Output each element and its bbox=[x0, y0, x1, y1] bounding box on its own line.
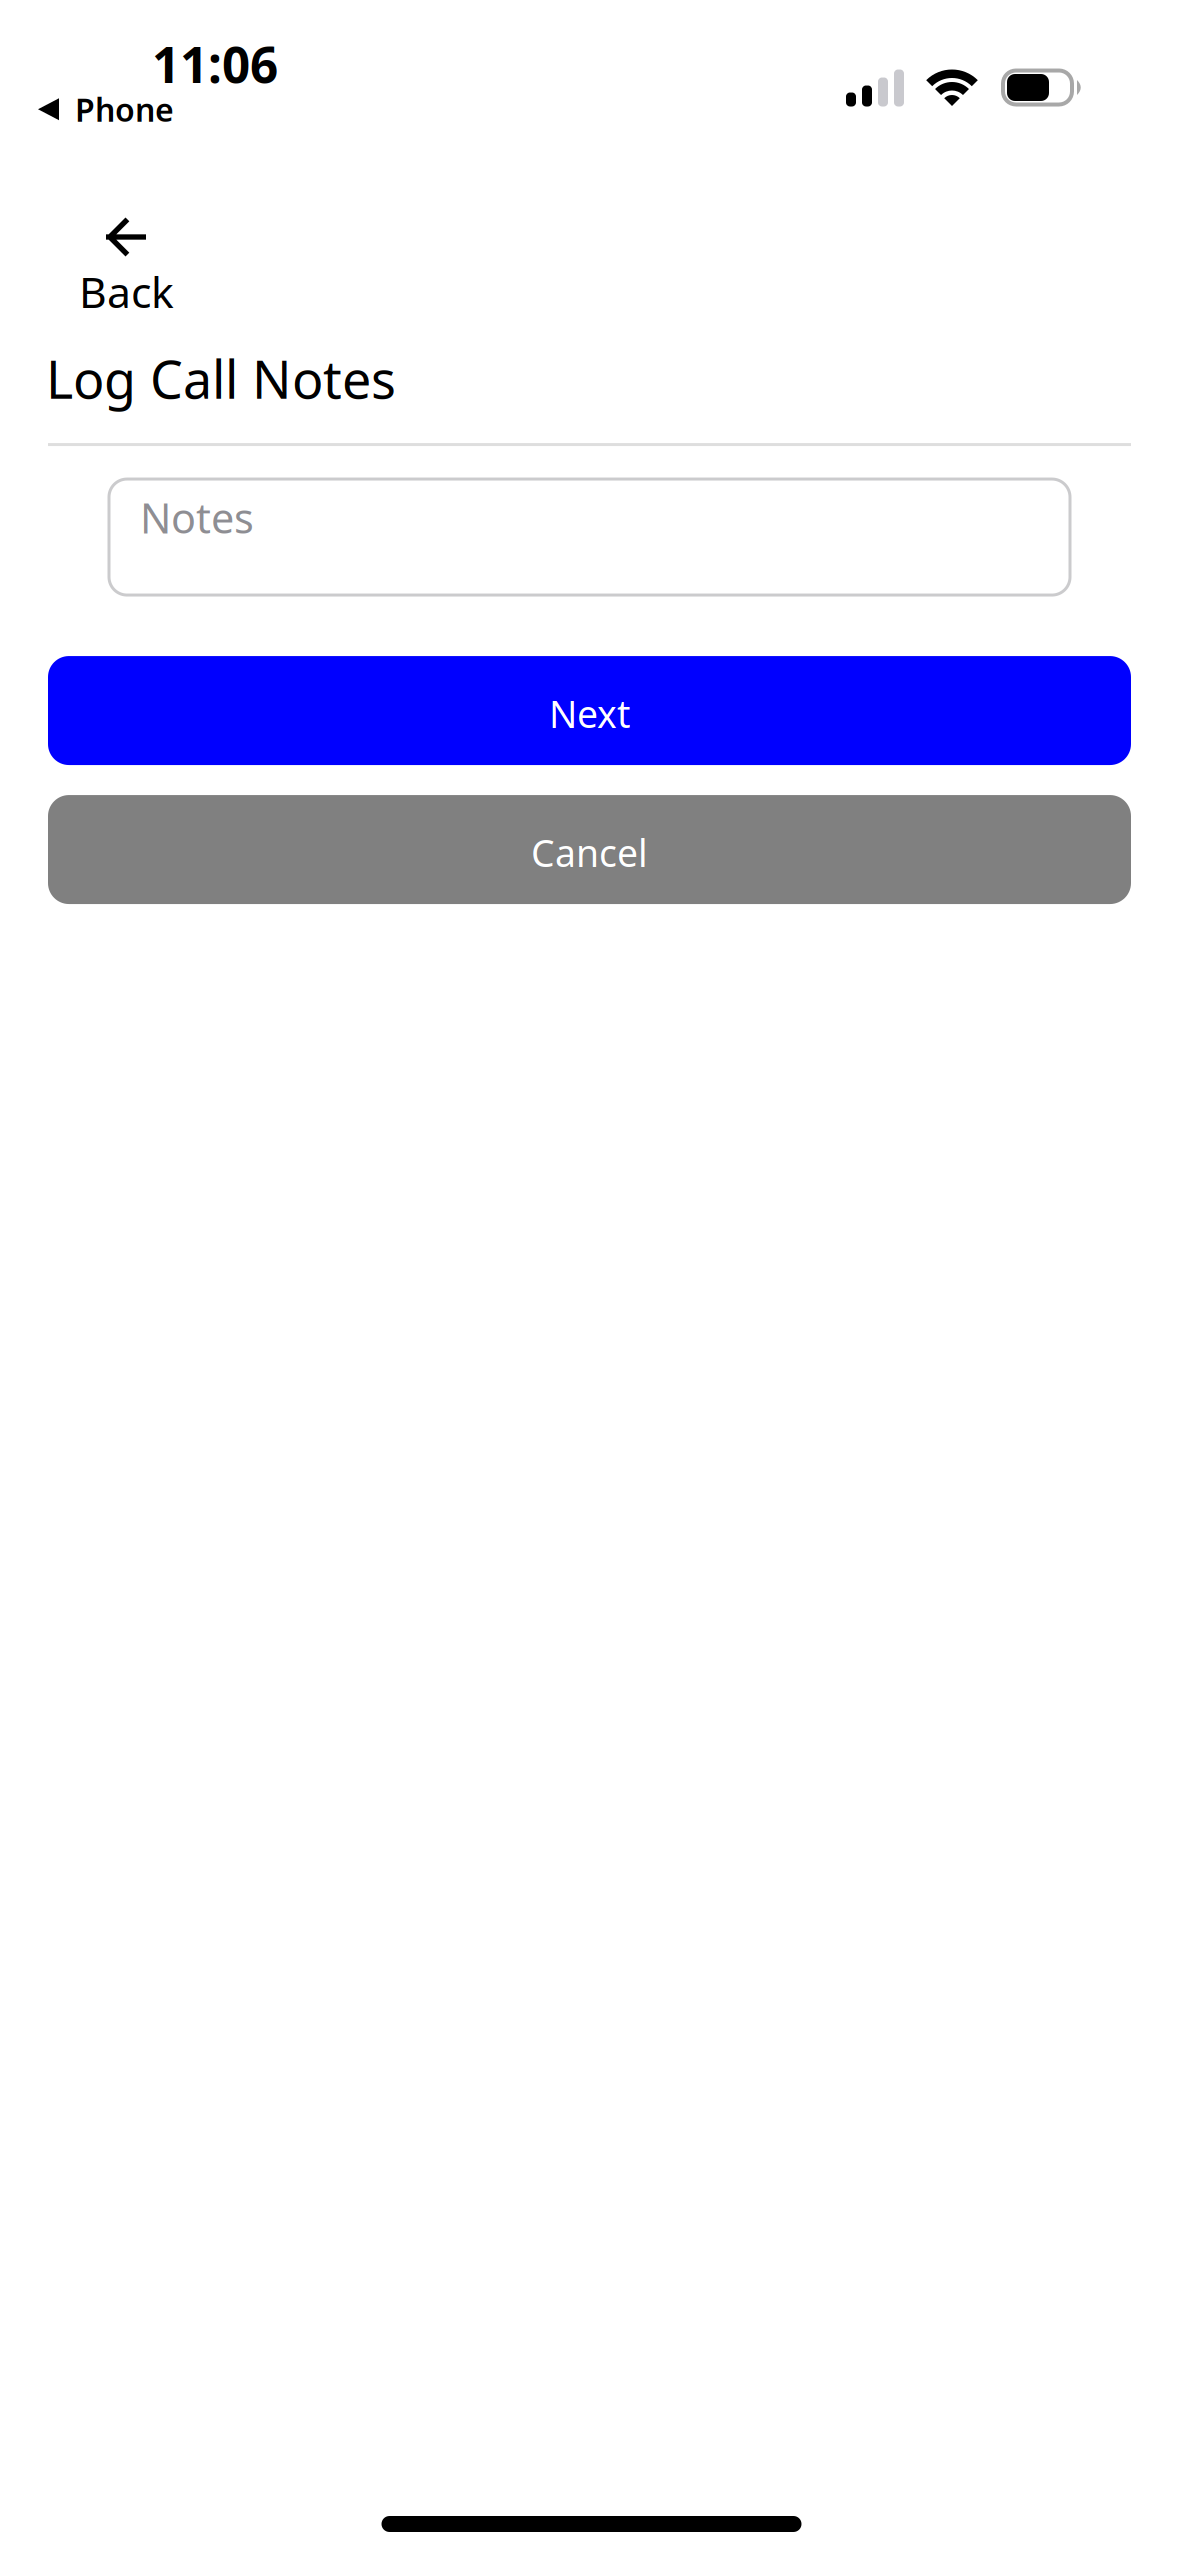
button[interactable]: Notes bbox=[109, 479, 1070, 595]
staticText: Next bbox=[549, 689, 630, 738]
button[interactable]: Cancel bbox=[48, 795, 1131, 904]
staticText: Back bbox=[79, 263, 174, 320]
staticText: Notes bbox=[140, 490, 254, 545]
button[interactable]: Phone bbox=[38, 88, 174, 130]
button[interactable]: Back bbox=[0, 0, 174, 320]
staticText: Cancel bbox=[531, 828, 648, 877]
button[interactable]: Next bbox=[48, 656, 1131, 765]
staticText: Log Call Notes bbox=[46, 344, 396, 413]
staticText: 11:06 bbox=[152, 31, 278, 96]
staticText: Phone bbox=[75, 88, 174, 130]
